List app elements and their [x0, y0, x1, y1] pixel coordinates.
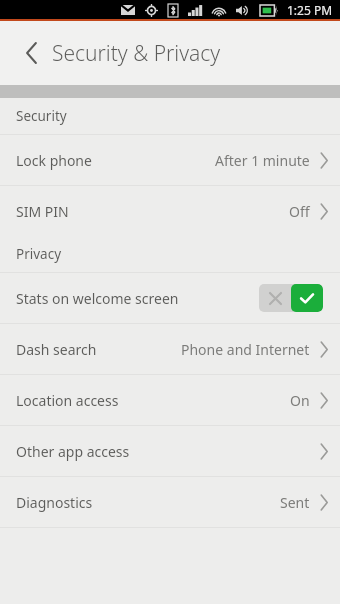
button[interactable]: Dash search [0, 324, 340, 374]
staticText: On [290, 391, 310, 410]
button[interactable]: Back [14, 36, 48, 70]
button[interactable]: Location access [0, 375, 340, 425]
staticText: SIM PIN [16, 202, 69, 221]
staticText: After 1 minute [215, 151, 310, 170]
staticText: Dash search [16, 340, 97, 359]
staticText: Phone and Internet [181, 340, 310, 359]
staticText: Diagnostics [16, 493, 93, 512]
staticText: Off [289, 202, 310, 221]
staticText: Location access [16, 391, 119, 410]
staticText: Privacy [16, 245, 62, 263]
staticText: Security & Privacy [52, 39, 221, 68]
staticText: Security [16, 107, 67, 125]
button[interactable]: Lock phone [0, 135, 340, 185]
staticText: Stats on welcome screen [16, 289, 179, 308]
button[interactable]: SIM PIN [0, 186, 340, 236]
staticText: Lock phone [16, 151, 92, 170]
button[interactable]: Diagnostics [0, 477, 340, 527]
staticText: Other app access [16, 442, 130, 461]
staticText: Sent [280, 493, 310, 512]
button[interactable]: Other app access [0, 426, 340, 476]
staticText: 1:25 PM [287, 2, 333, 18]
button[interactable]: Stats on welcome screen toggle, on [259, 284, 323, 312]
button[interactable]: Stats on welcome screen [0, 273, 340, 323]
